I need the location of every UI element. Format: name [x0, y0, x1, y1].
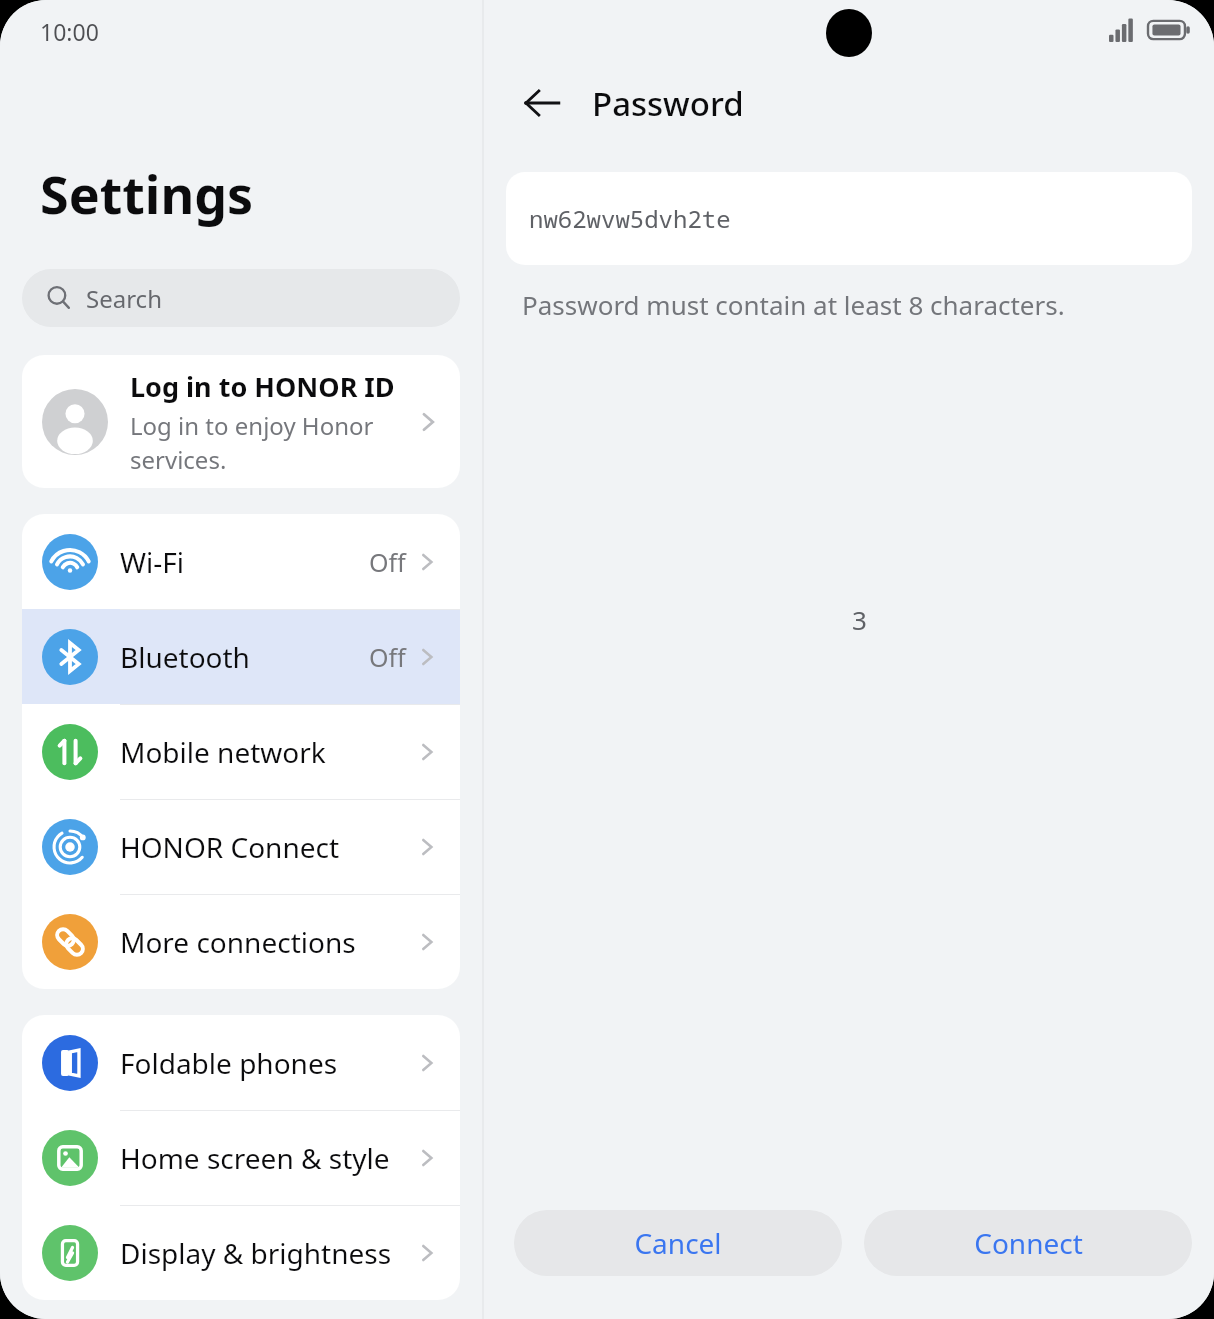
button[interactable]: Foldable phones	[22, 1015, 460, 1110]
staticText: Search	[86, 282, 162, 315]
staticText: Off	[369, 545, 406, 579]
staticText: Mobile network	[120, 733, 326, 771]
button[interactable]: nw62wvw5dvh2te	[506, 172, 1192, 265]
staticText: Bluetooth	[120, 638, 250, 676]
button[interactable]: Home screen & style	[22, 1110, 460, 1205]
staticText: Foldable phones	[120, 1044, 338, 1082]
staticText: More connections	[120, 923, 356, 961]
button[interactable]: More connections	[22, 894, 460, 989]
staticText: Connect	[974, 1224, 1083, 1262]
button[interactable]: Wi-Fi	[22, 514, 460, 609]
staticText: nw62wvw5dvh2te	[529, 202, 731, 235]
staticText: 10:00	[40, 16, 99, 47]
button[interactable]: Bluetooth	[22, 609, 460, 704]
staticText: Log in to HONOR ID	[130, 368, 395, 405]
staticText: Cancel	[634, 1224, 722, 1262]
staticText: 3	[852, 602, 867, 637]
button[interactable]: Display & brightness	[22, 1205, 460, 1300]
staticText: Password	[592, 81, 744, 126]
button[interactable]: HONOR Connect	[22, 799, 460, 894]
staticText: Display & brightness	[120, 1234, 392, 1272]
button[interactable]: Connect	[864, 1210, 1192, 1276]
button[interactable]: Search	[22, 269, 460, 327]
button[interactable]: Mobile network	[22, 704, 460, 799]
staticText: HONOR Connect	[120, 828, 340, 866]
staticText: Off	[369, 640, 406, 674]
staticText: Settings	[40, 158, 254, 229]
staticText: Log in to enjoy Honor services.	[130, 409, 408, 476]
staticText: Wi-Fi	[120, 543, 185, 581]
button[interactable]: Log in to HONOR ID	[22, 355, 460, 488]
staticText: Password must contain at least 8 charact…	[522, 287, 1065, 322]
staticText: Home screen & style	[120, 1139, 390, 1177]
button[interactable]: Cancel	[514, 1210, 842, 1276]
button[interactable]: Back	[514, 75, 570, 131]
